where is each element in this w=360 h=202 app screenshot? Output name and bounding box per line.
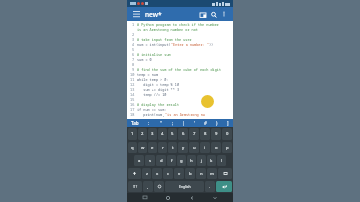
button[interactable]: q xyxy=(128,142,137,153)
staticText: o xyxy=(215,145,218,151)
button[interactable]: 0 xyxy=(222,128,232,140)
button[interactable]: k xyxy=(207,155,216,166)
button[interactable]: v xyxy=(174,168,184,179)
button[interactable]: n xyxy=(196,168,206,179)
staticText: # Python program to check if the number xyxy=(137,22,219,27)
staticText: 1 xyxy=(132,22,135,27)
staticText: 18 xyxy=(130,112,135,117)
button[interactable]: ; xyxy=(167,119,178,127)
staticText: "is an Armstrong nu xyxy=(165,112,205,117)
button[interactable]: English xyxy=(165,181,204,192)
button[interactable]: # xyxy=(200,119,211,127)
staticText: 9 xyxy=(132,67,135,72)
staticText: x xyxy=(156,171,159,177)
button[interactable]: | xyxy=(178,119,189,127)
button[interactable]: y xyxy=(178,142,188,153)
button[interactable]: 2 xyxy=(138,128,147,140)
button[interactable]: i xyxy=(200,142,210,153)
button[interactable]: Search xyxy=(208,9,219,20)
staticText: a xyxy=(138,158,141,164)
button[interactable]: 6 xyxy=(178,128,188,140)
button[interactable]: o xyxy=(211,142,221,153)
button[interactable]: 5 xyxy=(168,128,177,140)
button[interactable]: 7 xyxy=(189,128,199,140)
staticText: : xyxy=(148,120,150,126)
staticText: 6 xyxy=(182,131,185,137)
staticText: 8 xyxy=(132,62,135,67)
button[interactable]: 4 xyxy=(158,128,167,140)
button[interactable]: g xyxy=(177,155,186,166)
button[interactable]: Home xyxy=(163,193,173,202)
button[interactable]: d xyxy=(156,155,166,166)
button[interactable]: Backspace xyxy=(218,168,232,179)
staticText: # take input from the user xyxy=(137,37,192,42)
button[interactable]: ) xyxy=(211,119,222,127)
button[interactable]: Enter xyxy=(216,181,232,192)
button[interactable]: Tab xyxy=(127,119,143,127)
staticText: 13 xyxy=(130,87,135,92)
button[interactable]: ' xyxy=(189,119,200,127)
button[interactable]: Open file xyxy=(197,9,208,20)
button[interactable]: e xyxy=(148,142,157,153)
button[interactable]: c xyxy=(163,168,173,179)
button[interactable]: z xyxy=(142,168,151,179)
staticText: temp = num xyxy=(137,72,158,77)
staticText: 0 xyxy=(226,131,229,137)
button[interactable]: l xyxy=(217,155,226,166)
staticText: 16 xyxy=(130,102,135,107)
button[interactable]: , xyxy=(143,181,153,192)
staticText: b xyxy=(189,171,192,177)
button[interactable]: f xyxy=(167,155,176,166)
staticText: 4 xyxy=(132,42,135,47)
button[interactable]: ] xyxy=(222,119,233,127)
staticText: q xyxy=(131,145,134,151)
button[interactable]: a xyxy=(134,155,144,166)
button[interactable]: u xyxy=(189,142,199,153)
staticText: 8 xyxy=(204,131,207,137)
staticText: | xyxy=(182,120,185,126)
staticText: "Enter a number: " xyxy=(171,42,209,47)
button[interactable]: 1 xyxy=(128,128,137,140)
button[interactable]: 8 xyxy=(200,128,210,140)
button[interactable]: r xyxy=(158,142,167,153)
button[interactable]: 3 xyxy=(148,128,157,140)
button[interactable]: Hide keyboard xyxy=(210,193,220,202)
staticText: s xyxy=(149,158,152,164)
staticText: ] xyxy=(227,120,229,126)
staticText: 7 xyxy=(132,57,135,62)
staticText: 11 xyxy=(130,77,135,82)
staticText: z xyxy=(146,171,148,177)
button[interactable]: !1? xyxy=(128,181,142,192)
button[interactable]: x xyxy=(152,168,162,179)
staticText: r xyxy=(162,145,164,151)
staticText: , xyxy=(147,184,149,190)
button[interactable]: m xyxy=(207,168,217,179)
button[interactable]: Change language xyxy=(154,181,164,192)
staticText: 5 xyxy=(171,131,174,137)
button[interactable]: w xyxy=(138,142,147,153)
staticText: 5 xyxy=(132,47,135,52)
button[interactable]: More options xyxy=(219,9,229,19)
button[interactable]: Keyboard xyxy=(140,193,150,202)
staticText: 7 xyxy=(193,131,196,137)
staticText: c xyxy=(167,171,170,177)
button[interactable]: p xyxy=(222,142,232,153)
button[interactable]: b xyxy=(185,168,195,179)
button[interactable]: s xyxy=(145,155,155,166)
staticText: 1 xyxy=(131,131,134,137)
button[interactable]: Shift xyxy=(128,168,141,179)
button[interactable]: . xyxy=(205,181,215,192)
staticText: " xyxy=(160,120,162,126)
staticText: while temp > 0: xyxy=(137,77,169,82)
button[interactable]: Menu xyxy=(131,9,141,19)
button[interactable]: t xyxy=(168,142,177,153)
button[interactable]: 9 xyxy=(211,128,221,140)
button[interactable]: : xyxy=(143,119,155,127)
staticText: # initialise sum xyxy=(137,52,171,57)
button[interactable]: h xyxy=(187,155,196,166)
button[interactable]: " xyxy=(155,119,167,127)
button[interactable]: j xyxy=(197,155,206,166)
button[interactable]: Back xyxy=(187,193,197,202)
staticText: 3 xyxy=(151,131,154,137)
staticText: temp //= 10 xyxy=(137,92,167,97)
